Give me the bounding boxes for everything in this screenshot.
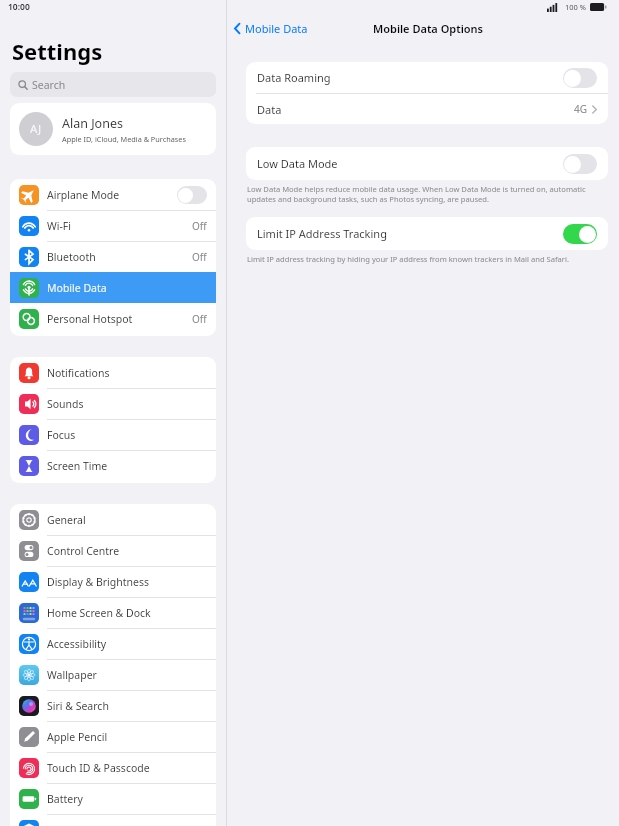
staticText: Airplane Mode (47, 188, 120, 202)
staticText: Alan Jones (62, 115, 123, 132)
staticText: Focus (47, 428, 76, 442)
button[interactable]: Limit IP Address Tracking (246, 217, 608, 250)
staticText: Mobile Data (47, 281, 107, 295)
staticText: Low Data Mode helps reduce mobile data u… (247, 184, 607, 204)
staticText: Siri & Search (47, 699, 109, 713)
button[interactable]: Siri & Search (10, 690, 216, 721)
button[interactable]: Wallpaper (10, 659, 216, 690)
button[interactable]: Home Screen & Dock (10, 597, 216, 628)
staticText: Home Screen & Dock (47, 606, 151, 620)
button[interactable]: General (10, 504, 216, 535)
staticText: 10:00 (8, 1, 30, 13)
button[interactable]: Display & Brightness (10, 566, 216, 597)
staticText: Personal Hotspot (47, 312, 133, 326)
staticText: Accessibility (47, 637, 107, 651)
button[interactable]: Airplane Mode (10, 179, 216, 210)
staticText: Wi-Fi (47, 219, 72, 233)
staticText: Limit IP Address Tracking (257, 226, 387, 241)
button[interactable]: Battery (10, 783, 216, 814)
button[interactable]: Search (10, 72, 216, 97)
staticText: Data (257, 102, 282, 117)
staticText: Apple Pencil (47, 730, 108, 744)
button[interactable]: Wi-Fi (10, 210, 216, 241)
button[interactable]: Control Centre (10, 535, 216, 566)
staticText: Notifications (47, 366, 110, 380)
button[interactable]: AJ (10, 103, 216, 155)
staticText: Mobile Data Options (373, 21, 484, 36)
staticText: Mobile Data (245, 21, 308, 36)
button[interactable]: Low Data Mode (246, 147, 608, 180)
button[interactable]: Privacy (10, 814, 216, 826)
staticText: Sounds (47, 397, 84, 411)
button[interactable]: Data Roaming (246, 62, 608, 93)
staticText: Screen Time (47, 459, 108, 473)
button[interactable]: Personal Hotspot (10, 303, 216, 334)
staticText: Bluetooth (47, 250, 96, 264)
button[interactable]: Apple Pencil (10, 721, 216, 752)
staticText: Display & Brightness (47, 575, 150, 589)
button[interactable]: On (563, 224, 597, 244)
button[interactable]: Limit IP Address Tracking (246, 217, 608, 250)
staticText: Limit IP address tracking by hiding your… (247, 254, 607, 264)
staticText: Off (192, 312, 207, 326)
staticText: Touch ID & Passcode (47, 761, 150, 775)
button[interactable]: Screen Time (10, 450, 216, 481)
button[interactable]: Accessibility (10, 628, 216, 659)
staticText: General (47, 513, 86, 527)
staticText: Wallpaper (47, 668, 97, 682)
button[interactable]: Off (563, 68, 597, 88)
button[interactable]: Off (563, 154, 597, 174)
staticText: Settings (12, 36, 103, 66)
staticText: Low Data Mode (257, 156, 338, 171)
button[interactable]: Sounds (10, 388, 216, 419)
staticText: Off (192, 250, 207, 264)
button[interactable]: Mobile Data (233, 20, 308, 36)
staticText: AJ (30, 121, 42, 137)
button[interactable]: Mobile Data (10, 272, 216, 303)
staticText: 4G (574, 102, 587, 116)
button[interactable]: Bluetooth (10, 241, 216, 272)
staticText: Apple ID, iCloud, Media & Purchases (62, 134, 186, 144)
staticText: 100 % (565, 2, 587, 12)
staticText: Off (192, 219, 207, 233)
button[interactable]: Off (177, 186, 207, 204)
staticText: Search (32, 78, 66, 92)
button[interactable]: Low Data Mode (246, 147, 608, 180)
button[interactable]: Notifications (10, 357, 216, 388)
staticText: Data Roaming (257, 70, 331, 85)
staticText: Control Centre (47, 544, 120, 558)
button[interactable]: Touch ID & Passcode (10, 752, 216, 783)
button[interactable]: Data (246, 94, 608, 124)
button[interactable]: Focus (10, 419, 216, 450)
staticText: Battery (47, 792, 83, 806)
